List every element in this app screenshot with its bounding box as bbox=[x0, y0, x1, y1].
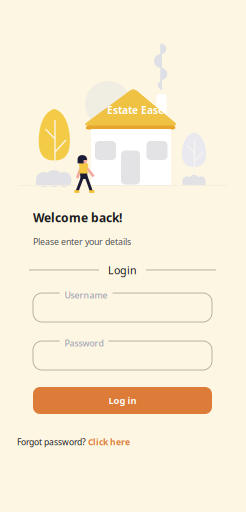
staticText: Password bbox=[64, 337, 103, 349]
staticText: Welcome back! bbox=[33, 209, 122, 226]
staticText: Log in bbox=[108, 394, 136, 407]
staticText: Estate Ease bbox=[107, 103, 164, 117]
button[interactable]: Log in bbox=[33, 387, 212, 414]
staticText: Click here bbox=[88, 436, 130, 448]
staticText: Please enter your details bbox=[33, 235, 131, 247]
staticText: Login bbox=[108, 263, 137, 277]
staticText: Forgot password? bbox=[17, 436, 86, 448]
staticText: Username bbox=[64, 289, 107, 301]
button[interactable]: Click here bbox=[88, 436, 130, 448]
